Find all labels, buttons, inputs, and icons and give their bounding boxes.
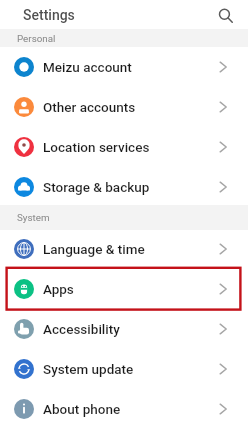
staticText: Personal (17, 33, 56, 44)
button[interactable]: Language & time (0, 229, 248, 269)
staticText: Settings (23, 7, 75, 23)
button[interactable]: Location services (0, 127, 248, 167)
button[interactable]: Storage & backup (0, 167, 248, 207)
staticText: Other accounts (43, 99, 136, 115)
button[interactable]: Other accounts (0, 87, 248, 127)
staticText: Apps (43, 281, 74, 297)
staticText: Storage & backup (43, 179, 150, 195)
button[interactable]: Meizu account (0, 47, 248, 87)
button[interactable]: Accessibility (0, 309, 248, 349)
button[interactable]: Apps (0, 269, 248, 309)
staticText: System (17, 212, 50, 223)
button[interactable]: Search (214, 4, 236, 26)
staticText: Language & time (43, 241, 145, 257)
staticText: Location services (43, 139, 150, 155)
button[interactable]: About phone (0, 389, 248, 422)
staticText: System update (43, 361, 134, 377)
button[interactable]: System update (0, 349, 248, 389)
staticText: About phone (43, 401, 121, 417)
staticText: Accessibility (43, 321, 120, 337)
staticText: Meizu account (43, 59, 132, 75)
